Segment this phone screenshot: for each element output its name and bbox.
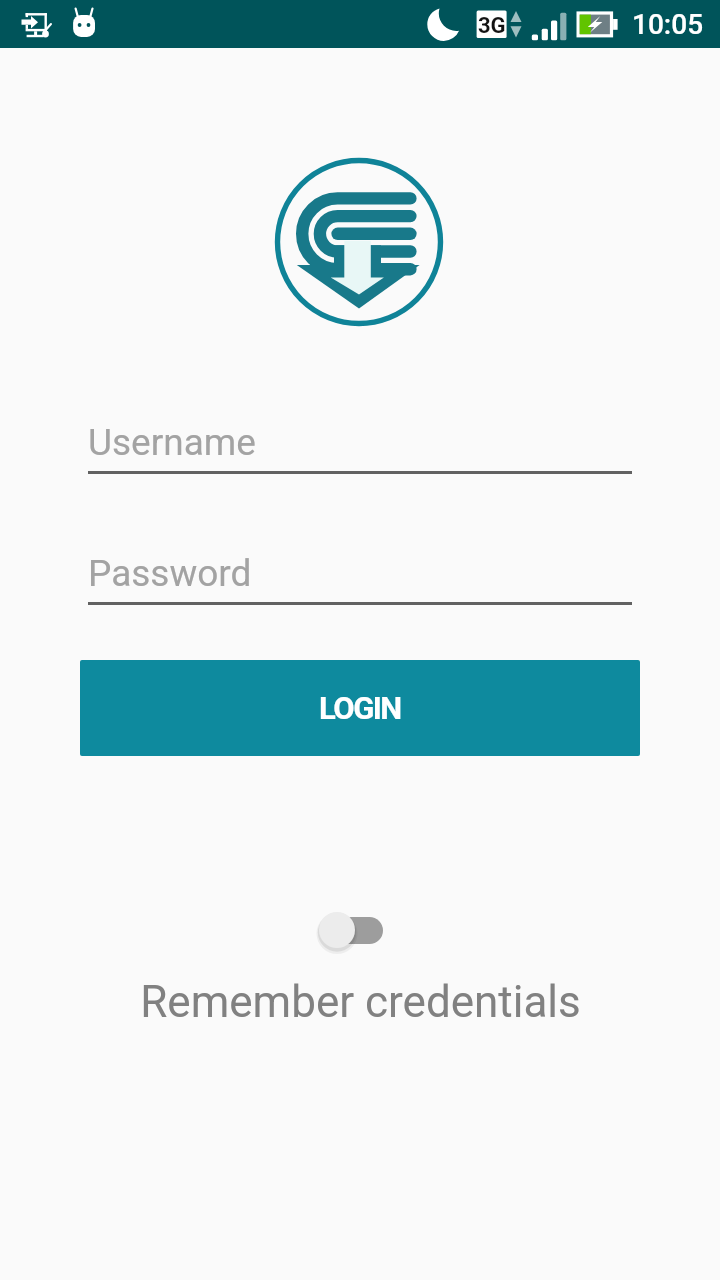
- staticText: LOGIN: [319, 690, 401, 726]
- staticText: 3G: [478, 13, 506, 39]
- button[interactable]: Remember credentials: [300, 900, 410, 960]
- staticText: Remember credentials: [140, 976, 581, 1028]
- button[interactable]: Remember credentials: [128, 970, 592, 1026]
- staticText: Username: [88, 421, 256, 464]
- button[interactable]: Username: [88, 411, 632, 474]
- button[interactable]: LOGIN: [80, 660, 640, 756]
- staticText: Password: [88, 552, 252, 595]
- staticText: 10:05: [632, 8, 704, 41]
- button[interactable]: Password: [88, 542, 632, 605]
